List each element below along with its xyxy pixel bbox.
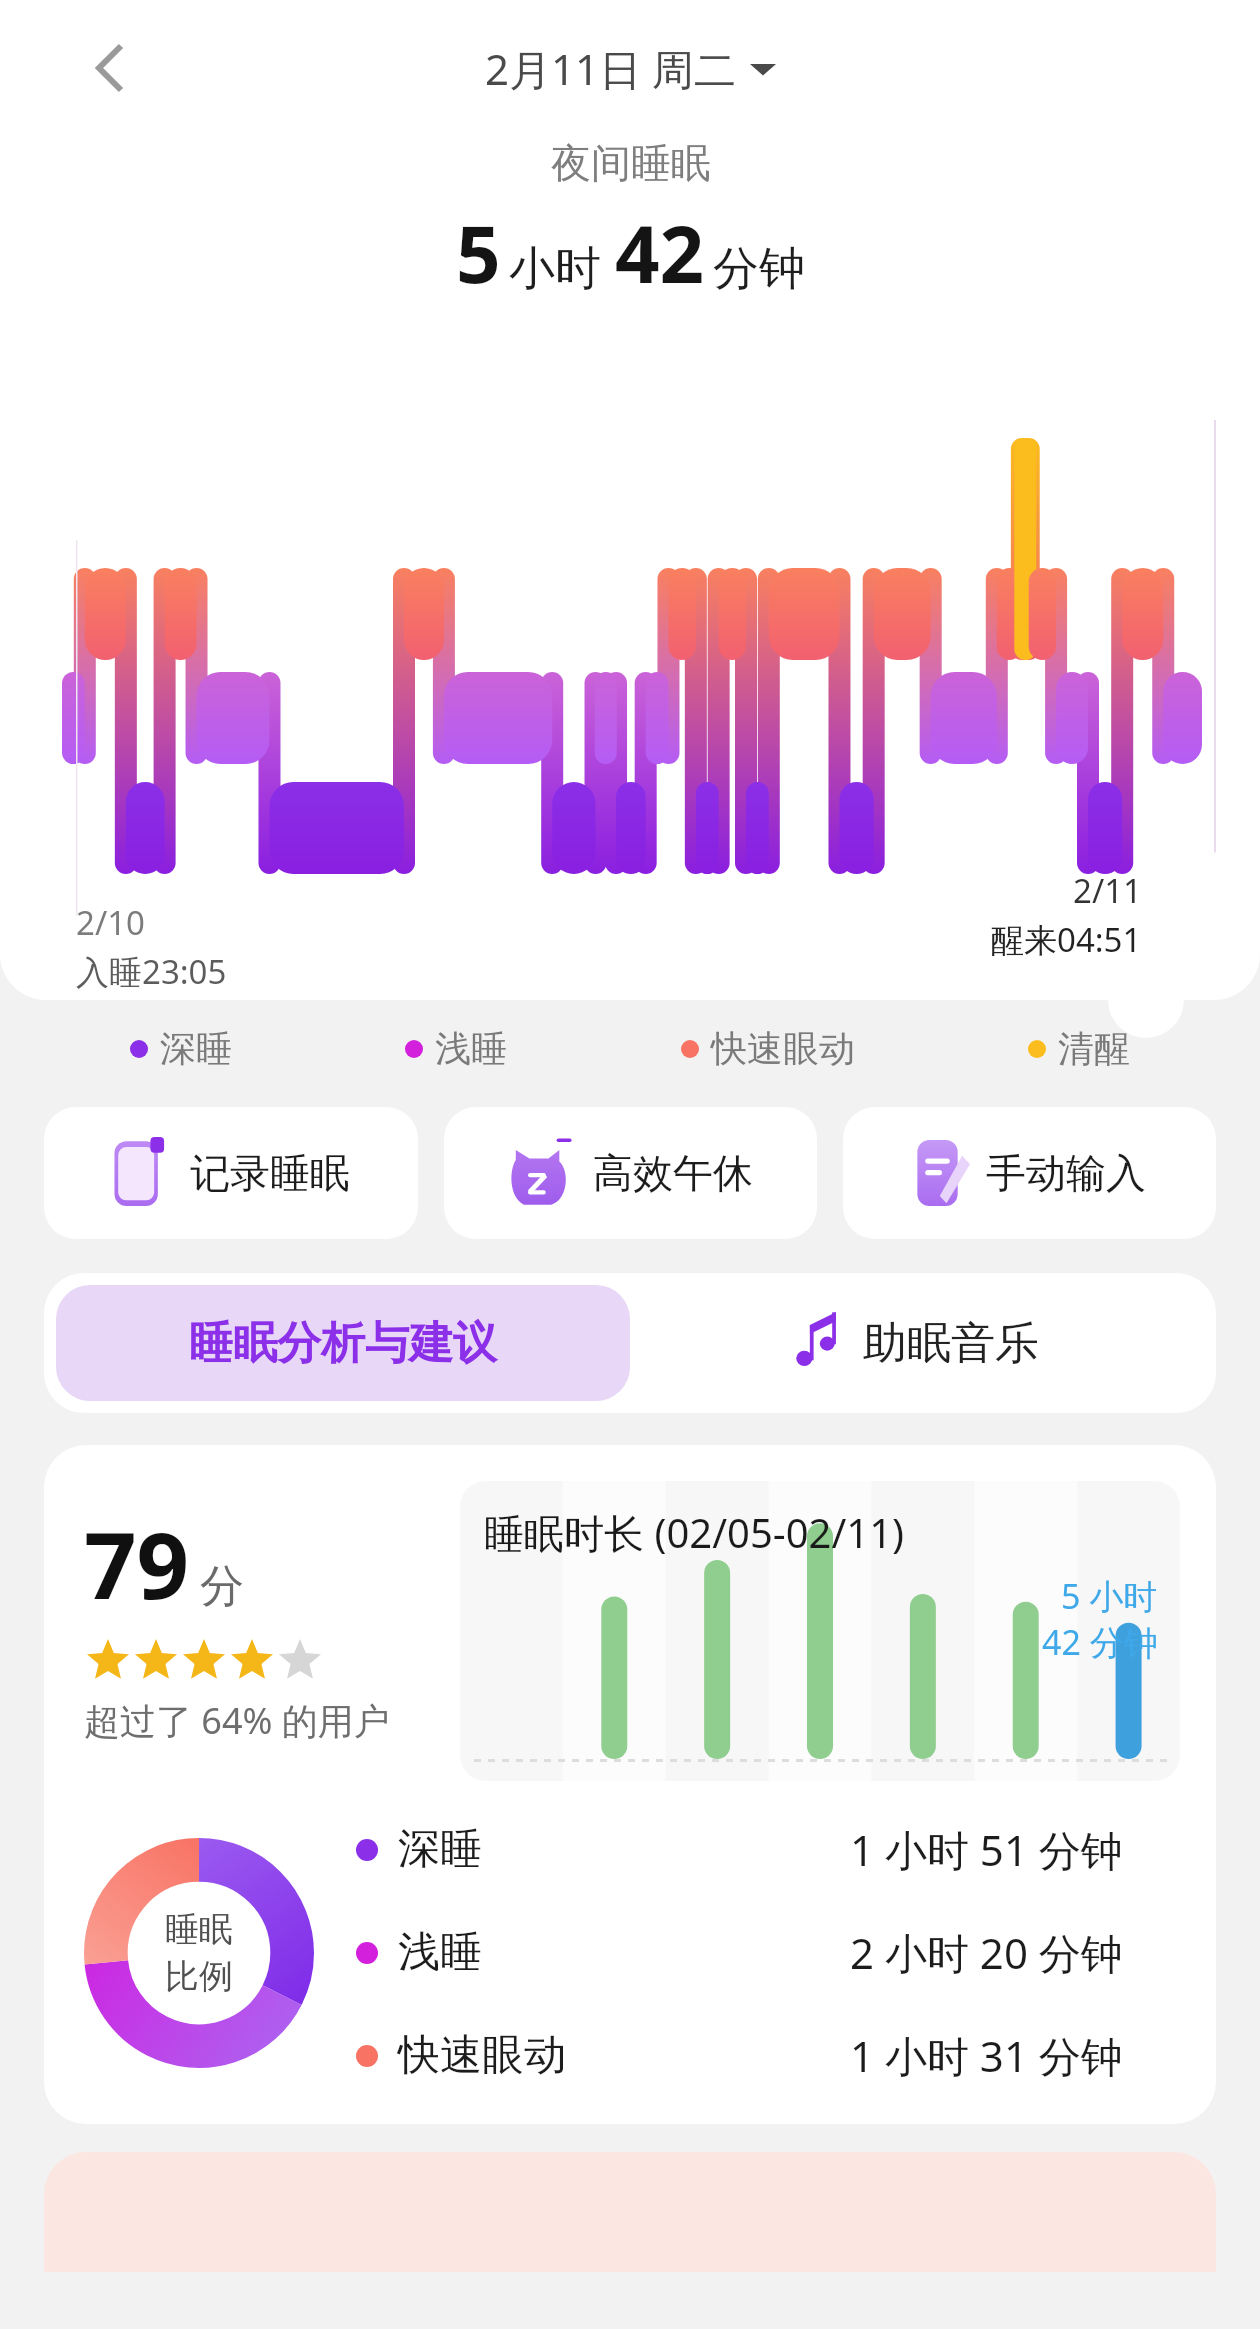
- button[interactable]: 手动输入: [843, 1107, 1216, 1239]
- staticText: 浅睡: [398, 1926, 482, 1979]
- staticText: 79: [84, 1501, 190, 1626]
- staticText: 42: [615, 200, 705, 306]
- staticText: 夜间睡眠: [551, 138, 711, 188]
- staticText: 5 小时: [1061, 1573, 1158, 1619]
- staticText: 睡眠时长 (02/05-02/11): [484, 1505, 905, 1560]
- staticText: 2 小时 20 分钟: [850, 1924, 1123, 1981]
- button[interactable]: 睡眠分析与建议: [56, 1285, 630, 1401]
- button[interactable]: 2月11日 周二: [473, 32, 788, 105]
- staticText: 浅睡: [435, 1026, 507, 1071]
- button[interactable]: 记录睡眠: [44, 1107, 418, 1239]
- staticText: 2/11: [1073, 868, 1142, 913]
- button[interactable]: 助眠音乐: [630, 1285, 1204, 1401]
- staticText: 助眠音乐: [863, 1316, 1039, 1371]
- staticText: 1 小时 31 分钟: [850, 2027, 1123, 2084]
- staticText: 分钟: [713, 240, 805, 298]
- button[interactable]: Back: [74, 32, 146, 104]
- staticText: 深睡: [160, 1026, 232, 1071]
- staticText: 记录睡眠: [190, 1148, 350, 1198]
- staticText: 醒来04:51: [991, 917, 1142, 962]
- staticText: 分: [200, 1559, 244, 1614]
- staticText: 比例: [165, 1955, 233, 1998]
- staticText: 2/10: [76, 900, 145, 945]
- button[interactable]: 高效午休: [444, 1107, 817, 1239]
- button[interactable]: More: [1108, 962, 1184, 1038]
- staticText: 清醒: [1058, 1026, 1130, 1071]
- staticText: 超过了 64% 的用户: [84, 1696, 390, 1745]
- staticText: 高效午休: [593, 1148, 753, 1198]
- staticText: 小时: [509, 240, 601, 298]
- staticText: 快速眼动: [398, 2029, 566, 2082]
- staticText: 1 小时 51 分钟: [850, 1821, 1123, 1878]
- staticText: 睡眠: [165, 1908, 233, 1951]
- staticText: 42 分钟: [1042, 1619, 1158, 1665]
- staticText: 2月11日 周二: [485, 40, 736, 97]
- staticText: 快速眼动: [711, 1026, 855, 1071]
- staticText: 睡眠分析与建议: [189, 1316, 497, 1371]
- staticText: 入睡23:05: [76, 949, 227, 994]
- staticText: 手动输入: [986, 1148, 1146, 1198]
- staticText: 深睡: [398, 1823, 482, 1876]
- staticText: 5: [456, 200, 501, 306]
